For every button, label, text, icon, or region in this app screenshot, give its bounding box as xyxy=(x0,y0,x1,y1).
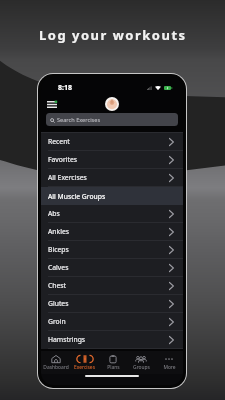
staticText: Exercises xyxy=(74,364,95,371)
button[interactable]: Recent xyxy=(41,133,183,150)
staticText: Chest xyxy=(48,281,67,290)
staticText: Hamstrings xyxy=(48,335,86,344)
button[interactable]: Profile xyxy=(105,97,119,111)
button[interactable]: Ankles xyxy=(41,223,183,240)
staticText: 8:18 xyxy=(58,83,72,93)
staticText: Biceps xyxy=(48,245,69,254)
button[interactable]: Hamstrings xyxy=(41,331,183,348)
button[interactable]: Dashboard xyxy=(41,351,70,374)
button[interactable]: Chest xyxy=(41,277,183,294)
button[interactable]: Search Exercises xyxy=(46,113,178,126)
button[interactable]: Abs xyxy=(41,205,183,222)
staticText: Abs xyxy=(48,209,60,218)
button[interactable]: Groin xyxy=(41,313,183,330)
button[interactable]: Calves xyxy=(41,259,183,276)
staticText: Groin xyxy=(48,317,66,326)
staticText: Search Exercises xyxy=(57,116,101,124)
staticText: Calves xyxy=(48,263,69,272)
button[interactable]: All Muscle Groups xyxy=(41,187,183,205)
button[interactable]: Menu xyxy=(45,97,59,111)
staticText: Groups xyxy=(133,364,150,371)
button[interactable]: All Exercises xyxy=(41,169,183,186)
staticText: Plans xyxy=(107,364,120,371)
staticText: Ankles xyxy=(48,227,70,236)
button[interactable]: Groups xyxy=(127,351,155,374)
staticText: All Muscle Groups xyxy=(48,192,106,201)
button[interactable]: More xyxy=(155,351,183,374)
button[interactable]: Plans xyxy=(99,351,127,374)
staticText: Favorites xyxy=(48,155,78,164)
staticText: Recent xyxy=(48,137,70,146)
button[interactable]: Exercises xyxy=(70,351,99,374)
staticText: Glutes xyxy=(48,299,69,308)
button[interactable]: Favorites xyxy=(41,151,183,168)
button[interactable]: Glutes xyxy=(41,295,183,312)
staticText: Dashboard xyxy=(43,364,69,371)
staticText: All Exercises xyxy=(48,173,87,182)
staticText: More xyxy=(163,364,176,371)
staticText: Log your workouts xyxy=(39,26,187,44)
button[interactable]: Biceps xyxy=(41,241,183,258)
